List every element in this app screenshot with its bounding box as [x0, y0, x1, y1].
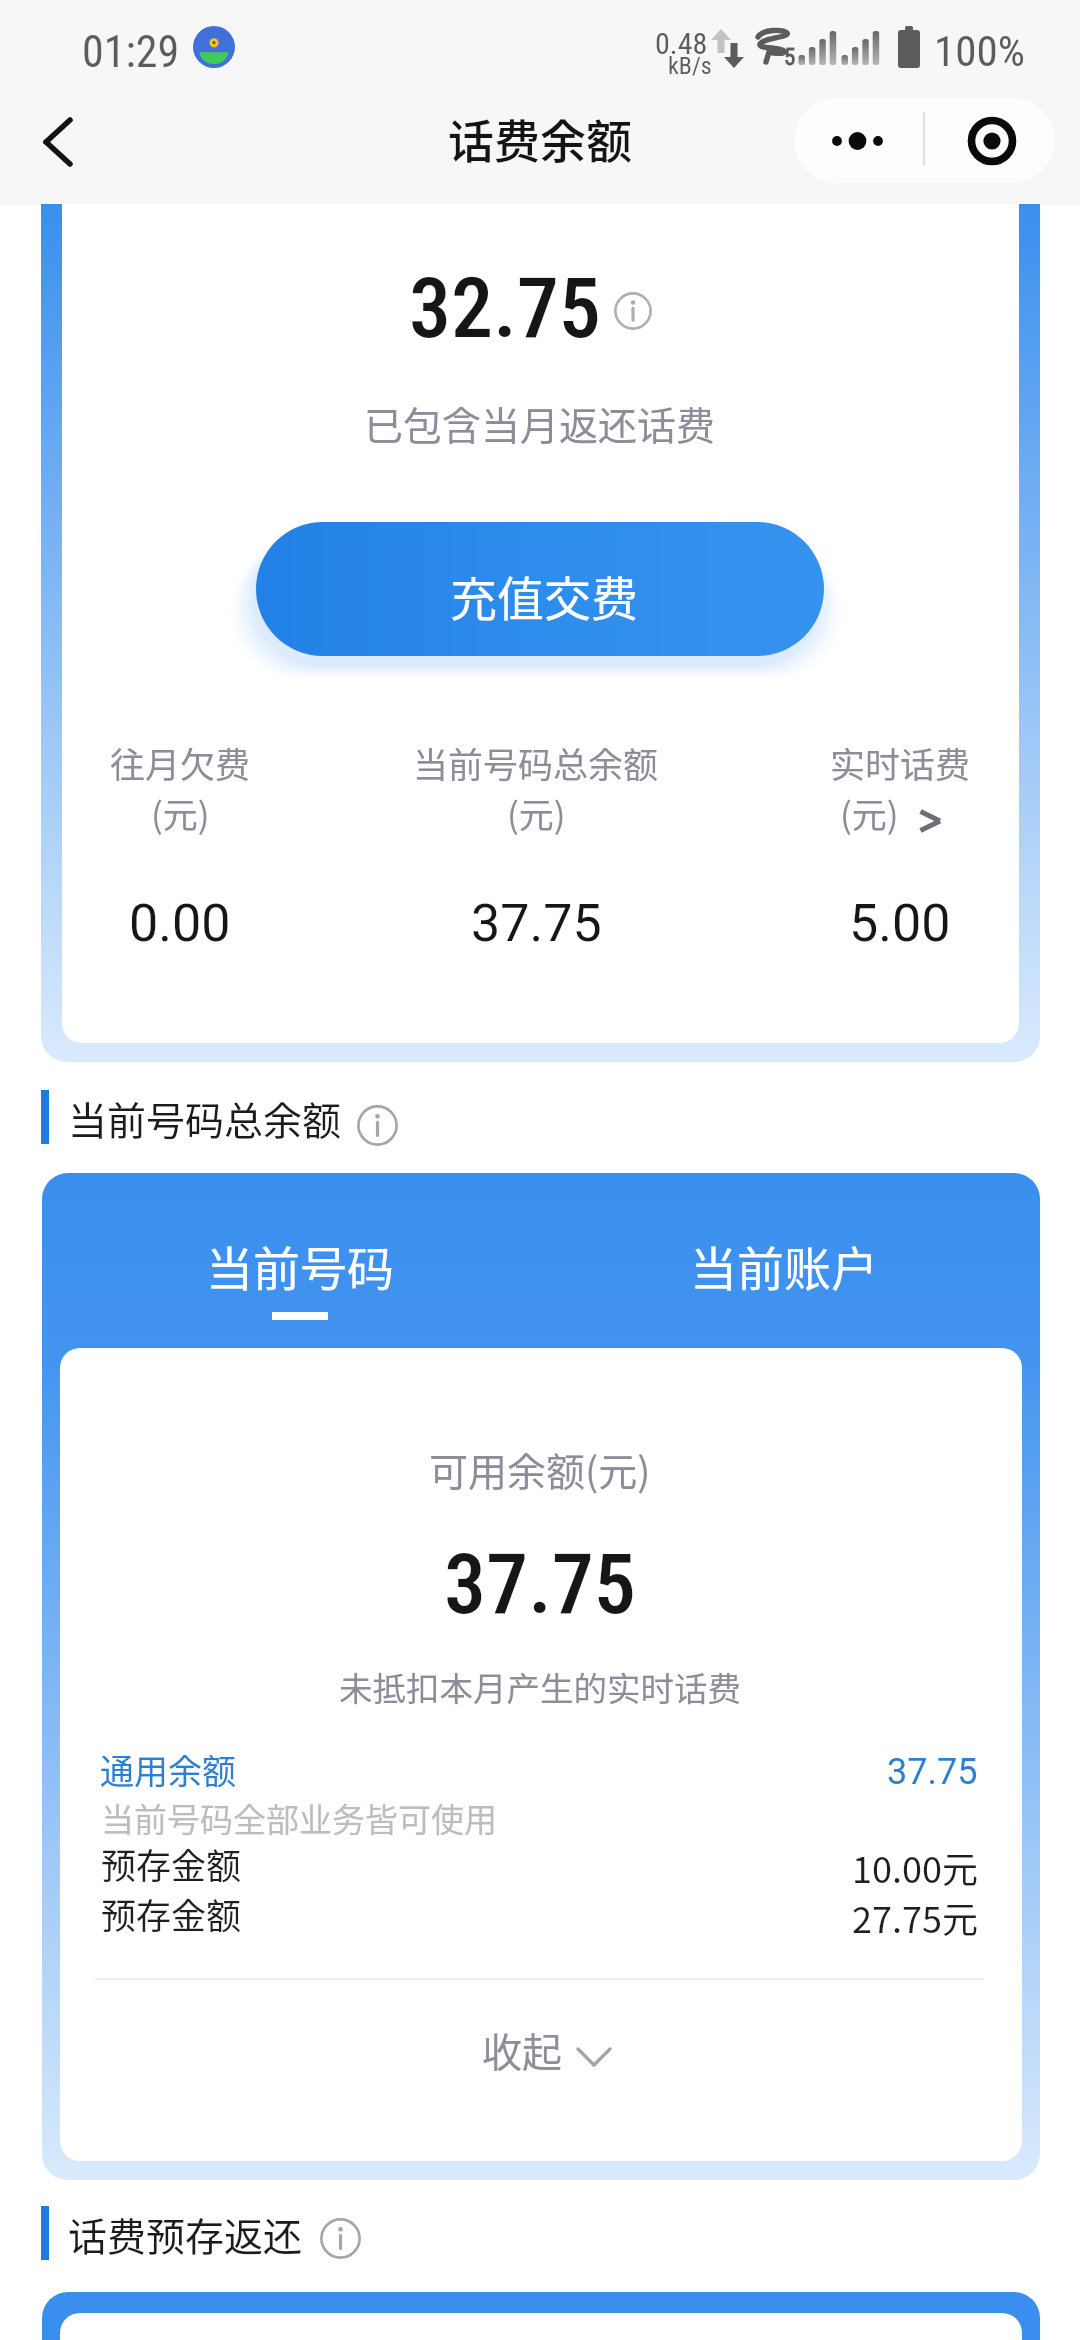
- staticText: 37.75: [444, 1535, 636, 1633]
- staticText: 通用余额: [100, 1745, 236, 1794]
- staticText: 收起: [482, 2021, 562, 2079]
- staticText: 5.00: [849, 893, 951, 954]
- staticText: 未抵扣本月产生的实时话费: [339, 1662, 741, 1711]
- button[interactable]: Back: [22, 106, 94, 178]
- staticText: 32.75: [409, 259, 601, 357]
- staticText: 37.75: [887, 1751, 978, 1793]
- staticText: (元): [507, 787, 566, 838]
- staticText: 当前号码总余额: [413, 737, 659, 788]
- staticText: (元): [840, 787, 899, 838]
- staticText: (元): [151, 787, 210, 838]
- button[interactable]: 当前账户: [654, 1228, 914, 1328]
- staticText: 往月欠费: [110, 737, 251, 788]
- staticText: 0.48: [655, 26, 708, 61]
- staticText: 预存金额: [101, 1888, 242, 1939]
- staticText: 话费预存返还: [68, 2206, 303, 2262]
- button[interactable]: 充值交费: [256, 522, 824, 656]
- staticText: 预存金额: [101, 1838, 242, 1889]
- staticText: 已包含当月返还话费: [364, 395, 716, 451]
- staticText: 100%: [934, 26, 1025, 76]
- staticText: 27.75元: [852, 1891, 978, 1943]
- staticText: 话费余额: [448, 105, 632, 172]
- staticText: 37.75: [471, 893, 602, 954]
- staticText: kB/s: [668, 52, 712, 80]
- staticText: 可用余额(元): [429, 1441, 651, 1497]
- staticText: 5: [784, 44, 796, 71]
- staticText: 当前号码总余额: [68, 1090, 342, 1146]
- staticText: 0.00: [129, 893, 231, 954]
- staticText: 实时话费: [830, 737, 971, 788]
- button[interactable]: More options: [794, 98, 1055, 183]
- staticText: 01:29: [82, 26, 180, 78]
- staticText: 当前号码: [206, 1231, 394, 1299]
- staticText: 当前号码全部业务皆可使用: [101, 1794, 497, 1842]
- button[interactable]: 当前号码: [170, 1228, 430, 1328]
- button[interactable]: 收起: [430, 2006, 650, 2094]
- staticText: 10.00元: [852, 1841, 978, 1893]
- staticText: 充值交费: [450, 561, 638, 629]
- staticText: 当前账户: [690, 1231, 878, 1299]
